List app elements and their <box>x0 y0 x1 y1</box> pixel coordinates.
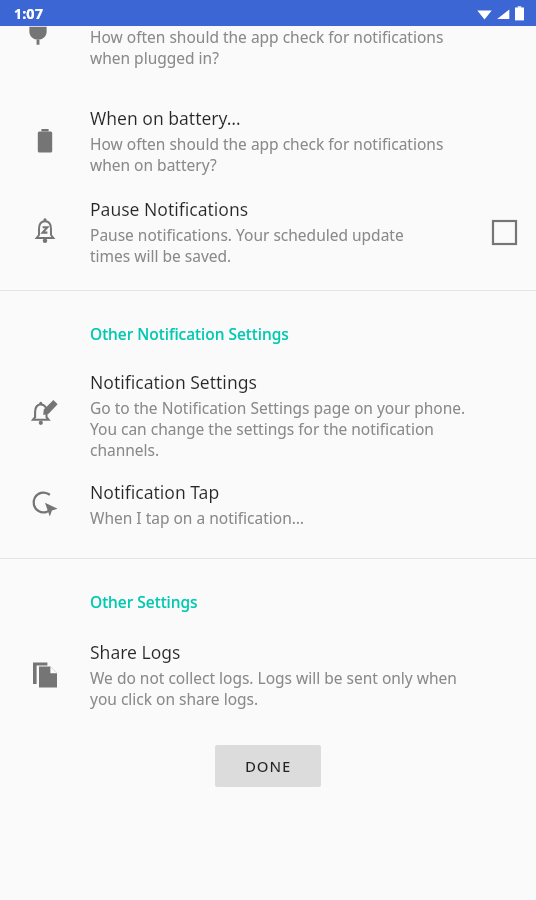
staticText: Pause notifications. Your scheduled upda… <box>90 224 404 245</box>
staticText: When on battery… <box>90 106 241 130</box>
other: When plugged in <box>20 26 56 62</box>
button[interactable]: Notification settings <box>0 370 536 460</box>
staticText: You can change the settings for the noti… <box>90 418 434 439</box>
other: Notification tap <box>0 489 90 519</box>
staticText: When I tap on a notification… <box>90 507 305 528</box>
staticText: We do not collect logs. Logs will be sen… <box>90 667 457 688</box>
button[interactable]: Share logs <box>0 640 536 709</box>
staticText: DONE <box>245 756 292 776</box>
staticText: channels. <box>90 439 160 460</box>
staticText: How often should the app check for notif… <box>90 133 444 154</box>
staticText: Go to the Notification Settings page on … <box>90 397 466 418</box>
staticText: you click on share logs. <box>90 688 259 709</box>
staticText: Notification Settings <box>90 370 257 394</box>
staticText: 1:07 <box>14 3 43 23</box>
other: Battery <box>0 126 90 156</box>
staticText: Other Notification Settings <box>90 323 289 344</box>
staticText: Share Logs <box>90 640 181 664</box>
staticText: How often should the app check for notif… <box>90 26 444 47</box>
staticText: when plugged in? <box>90 47 219 68</box>
staticText: when on battery? <box>90 154 217 175</box>
button[interactable]: When plugged in <box>0 26 536 82</box>
other: Notification settings <box>0 400 90 430</box>
button[interactable]: Battery <box>0 106 536 175</box>
other: Share logs <box>0 660 90 690</box>
button[interactable]: Pause notifications <box>0 197 536 266</box>
staticText: Other Settings <box>90 591 198 612</box>
other: Pause notifications <box>0 217 90 247</box>
button[interactable]: Notification tap <box>0 480 536 528</box>
button[interactable]: DONE <box>215 745 321 787</box>
button[interactable]: Pause notifications checkbox <box>480 208 528 256</box>
staticText: Notification Tap <box>90 480 220 504</box>
staticText: times will be saved. <box>90 245 232 266</box>
staticText: Pause Notifications <box>90 197 249 221</box>
